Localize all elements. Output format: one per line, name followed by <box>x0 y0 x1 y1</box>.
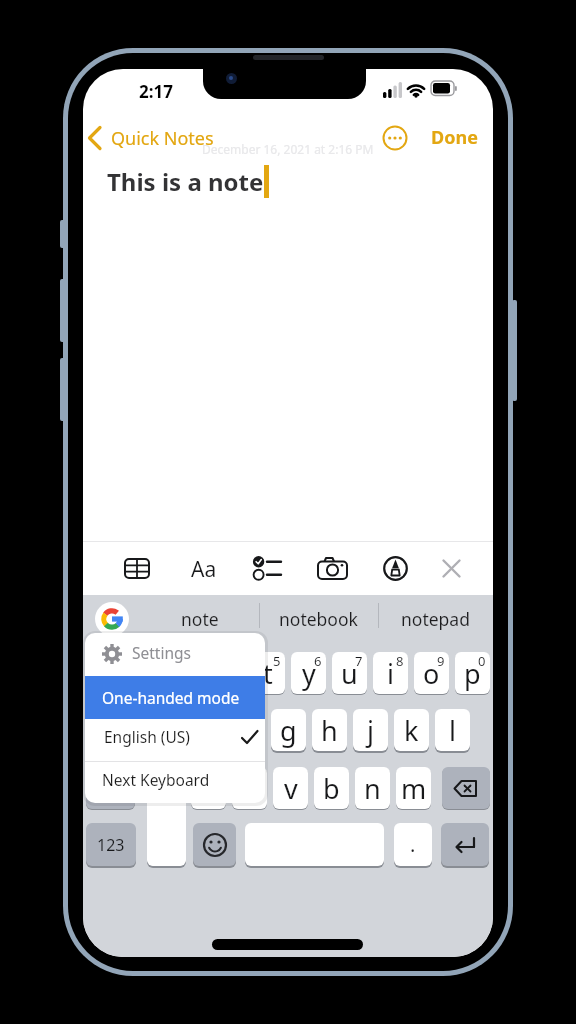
staticText: notebook <box>279 607 358 631</box>
staticText: 6 <box>314 652 322 670</box>
staticText: r <box>221 655 233 692</box>
staticText: v <box>284 770 298 807</box>
staticText: k <box>404 712 419 749</box>
staticText: note <box>181 607 219 631</box>
button[interactable]: m <box>396 767 431 809</box>
staticText: 9 <box>437 652 445 670</box>
button[interactable]: f <box>230 709 265 751</box>
button[interactable]: t <box>250 652 285 694</box>
button[interactable]: Aa <box>186 555 222 581</box>
staticText: n <box>364 770 381 807</box>
staticText: Settings <box>132 642 191 663</box>
button[interactable] <box>124 558 150 579</box>
staticText: q <box>95 655 112 692</box>
staticText: u <box>341 655 358 692</box>
button[interactable] <box>251 556 282 581</box>
button[interactable]: Done <box>431 125 478 150</box>
button[interactable]: s <box>148 709 183 751</box>
button[interactable]: English (US) <box>85 718 265 761</box>
staticText: g <box>280 712 297 749</box>
button[interactable]: q <box>86 652 121 694</box>
staticText: a <box>117 712 133 749</box>
button[interactable]: p <box>455 652 490 694</box>
button[interactable]: e <box>168 652 203 694</box>
staticText: 1 <box>109 652 117 670</box>
staticText: b <box>323 770 340 807</box>
staticText: m <box>401 770 427 807</box>
staticText: i <box>387 655 394 692</box>
button[interactable]: j <box>353 709 388 751</box>
staticText: . <box>410 831 416 858</box>
button[interactable]: w <box>127 652 162 694</box>
staticText: p <box>464 655 481 692</box>
staticText: o <box>423 655 440 692</box>
button[interactable]: note <box>150 607 250 631</box>
staticText: Quick Notes <box>111 126 214 151</box>
staticText: d <box>198 712 215 749</box>
button[interactable] <box>317 557 348 580</box>
button[interactable]: n <box>355 767 390 809</box>
button[interactable]: x <box>191 767 226 809</box>
staticText: z <box>161 770 174 807</box>
button[interactable] <box>441 823 489 866</box>
button[interactable]: y <box>291 652 326 694</box>
staticText: English (US) <box>104 726 190 747</box>
staticText: t <box>263 655 273 692</box>
staticText: 123 <box>97 834 125 856</box>
staticText: 7 <box>355 652 363 670</box>
staticText: Aa <box>191 555 217 581</box>
button[interactable]: z <box>150 767 185 809</box>
button[interactable]: h <box>312 709 347 751</box>
button[interactable]: o <box>414 652 449 694</box>
button[interactable]: d <box>189 709 224 751</box>
staticText: s <box>159 712 172 749</box>
staticText: l <box>449 712 456 749</box>
button[interactable]: g <box>271 709 306 751</box>
button[interactable] <box>442 767 490 809</box>
staticText: 5 <box>273 652 281 670</box>
staticText: h <box>321 712 338 749</box>
button[interactable]: notepad <box>385 607 485 631</box>
button[interactable] <box>95 602 129 636</box>
staticText: December 16, 2021 at 2:16 PM <box>202 141 374 157</box>
staticText: One-handed mode <box>102 687 240 708</box>
button[interactable]: Next Keyboard <box>85 762 265 804</box>
button[interactable] <box>86 767 135 809</box>
button[interactable]: notebook <box>268 607 368 631</box>
staticText: f <box>243 712 253 749</box>
staticText: 0 <box>478 652 486 670</box>
button[interactable]: 123 <box>86 823 136 866</box>
button[interactable] <box>147 823 186 866</box>
button[interactable] <box>443 560 460 577</box>
button[interactable] <box>383 556 408 581</box>
button[interactable] <box>245 823 384 866</box>
button[interactable] <box>382 125 408 151</box>
staticText: 8 <box>396 652 404 670</box>
button[interactable]: k <box>394 709 429 751</box>
button[interactable]: Settings <box>85 633 265 676</box>
button[interactable]: v <box>273 767 308 809</box>
staticText: j <box>367 712 374 749</box>
button[interactable] <box>147 794 186 866</box>
button[interactable]: c <box>232 767 267 809</box>
button[interactable] <box>193 823 236 866</box>
button[interactable]: a <box>107 709 142 751</box>
staticText: w <box>134 655 156 692</box>
button[interactable]: r <box>209 652 244 694</box>
staticText: This is a note <box>107 165 264 198</box>
button[interactable]: Quick Notes <box>85 124 225 152</box>
staticText: e <box>178 655 194 692</box>
button[interactable]: One-handed mode <box>85 676 265 719</box>
button[interactable]: b <box>314 767 349 809</box>
staticText: x <box>201 770 216 807</box>
staticText: 2:17 <box>139 80 173 102</box>
button[interactable]: u <box>332 652 367 694</box>
staticText: c <box>243 770 256 807</box>
staticText: 2 <box>150 652 158 670</box>
button[interactable]: i <box>373 652 408 694</box>
staticText: Next Keyboard <box>102 769 210 790</box>
button[interactable]: l <box>435 709 470 751</box>
button[interactable]: . <box>394 823 432 866</box>
